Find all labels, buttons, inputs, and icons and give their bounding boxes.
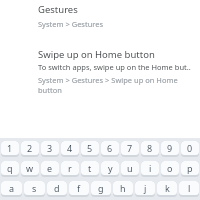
staticText: System > Gestures > Swipe up on Home but… — [38, 75, 178, 95]
button[interactable]: 5 — [81, 141, 99, 157]
button[interactable]: j — [135, 181, 155, 197]
button[interactable]: h — [113, 181, 133, 197]
staticText: a — [9, 182, 15, 194]
button[interactable]: 0 — [181, 141, 199, 157]
staticText: 9 — [167, 142, 173, 154]
button[interactable]: 3 — [41, 141, 59, 157]
staticText: w — [26, 162, 34, 174]
button[interactable]: g — [91, 181, 111, 197]
button[interactable]: u — [121, 161, 139, 177]
button[interactable]: y — [101, 161, 119, 177]
staticText: To switch apps, swipe up on the Home but… — [38, 62, 191, 72]
staticText: y — [108, 162, 113, 174]
staticText: 5 — [87, 142, 93, 154]
staticText: Swipe up on Home button — [38, 48, 155, 61]
staticText: 6 — [107, 142, 113, 154]
staticText: o — [167, 162, 173, 174]
staticText: q — [7, 162, 13, 174]
staticText: p — [187, 162, 193, 174]
button[interactable]: 7 — [121, 141, 139, 157]
staticText: s — [32, 182, 37, 194]
button[interactable]: r — [61, 161, 79, 177]
staticText: 4 — [67, 142, 73, 154]
staticText: t — [88, 162, 92, 174]
staticText: e — [47, 162, 53, 174]
staticText: 2 — [27, 142, 33, 154]
button[interactable]: i — [141, 161, 159, 177]
button[interactable]: 6 — [101, 141, 119, 157]
staticText: 7 — [127, 142, 133, 154]
button[interactable]: l — [179, 181, 199, 197]
staticText: h — [120, 182, 126, 194]
button[interactable]: p — [181, 161, 199, 177]
button[interactable]: q — [1, 161, 19, 177]
button[interactable]: f — [69, 181, 89, 197]
staticText: 1 — [7, 142, 13, 154]
staticText: k — [165, 182, 170, 194]
staticText: Gestures — [38, 3, 78, 16]
staticText: r — [68, 162, 72, 174]
staticText: l — [188, 182, 191, 194]
staticText: g — [98, 182, 104, 194]
button[interactable]: d — [47, 181, 67, 197]
button[interactable]: 4 — [61, 141, 79, 157]
staticText: j — [144, 182, 147, 194]
staticText: i — [149, 162, 152, 174]
button[interactable]: t — [81, 161, 99, 177]
button[interactable]: s — [24, 181, 45, 197]
button[interactable]: 2 — [21, 141, 39, 157]
button[interactable]: Gestures — [38, 3, 196, 29]
button[interactable]: w — [21, 161, 39, 177]
button[interactable]: 8 — [141, 141, 159, 157]
button[interactable]: Swipe up on Home button — [38, 48, 196, 95]
staticText: 8 — [147, 142, 153, 154]
staticText: d — [54, 182, 60, 194]
staticText: System > Gestures — [38, 19, 104, 29]
staticText: 0 — [187, 142, 193, 154]
button[interactable]: a — [1, 181, 22, 197]
button[interactable]: k — [157, 181, 177, 197]
staticText: 3 — [47, 142, 53, 154]
button[interactable]: e — [41, 161, 59, 177]
button[interactable]: 1 — [1, 141, 19, 157]
staticText: u — [127, 162, 133, 174]
button[interactable]: 9 — [161, 141, 179, 157]
button[interactable]: o — [161, 161, 179, 177]
staticText: f — [77, 182, 81, 194]
